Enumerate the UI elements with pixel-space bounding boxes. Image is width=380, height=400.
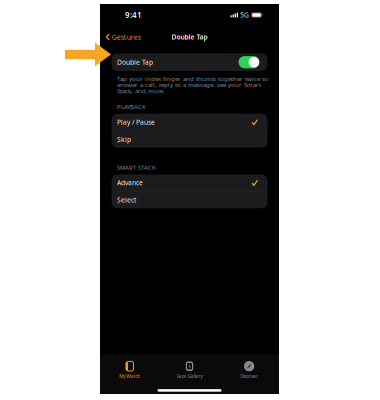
staticText: Double Tap	[171, 32, 207, 42]
staticText: Select	[117, 195, 136, 204]
staticText: Face Gallery	[176, 373, 202, 379]
button[interactable]: Select	[111, 192, 267, 208]
staticText: My Watch	[119, 373, 140, 379]
staticText: Gestures	[112, 32, 141, 42]
staticText: Double Tap	[117, 58, 153, 67]
button[interactable]: Play / Pause	[111, 114, 267, 130]
staticText: SMART STACK	[117, 163, 156, 171]
staticText: PLAYBACK	[117, 103, 146, 111]
button[interactable]: Skip	[111, 131, 267, 148]
staticText: Discover	[240, 373, 258, 379]
button[interactable]: Face Gallery	[160, 356, 219, 380]
staticText: Tap your index finger and thumb together…	[117, 74, 268, 95]
staticText: Advance	[117, 178, 143, 187]
button[interactable]: Double Tap	[238, 56, 259, 68]
button[interactable]: Gestures	[105, 28, 147, 46]
button[interactable]: Advance	[111, 174, 267, 191]
button[interactable]: My Watch	[100, 356, 160, 380]
button[interactable]: Discover	[219, 356, 279, 380]
staticText: Skip	[117, 135, 131, 144]
staticText: Play / Pause	[117, 118, 155, 127]
staticText: 9:41	[125, 10, 142, 20]
staticText: 5G	[240, 10, 249, 20]
